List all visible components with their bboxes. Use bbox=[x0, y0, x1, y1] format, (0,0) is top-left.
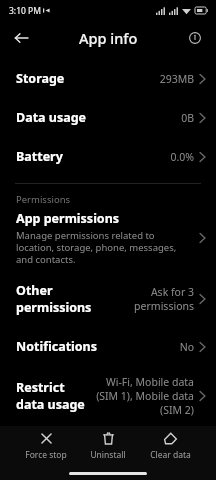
button[interactable]: App details bbox=[182, 25, 208, 51]
staticText: Restrict data usage bbox=[16, 379, 96, 413]
staticText: Manage permissions related to location, … bbox=[16, 229, 194, 266]
button[interactable]: Clear data bbox=[139, 429, 201, 464]
button[interactable]: Other permissions bbox=[0, 273, 216, 325]
staticText: Storage bbox=[16, 70, 65, 87]
button[interactable]: Storage bbox=[0, 59, 216, 98]
staticText: App info bbox=[79, 28, 138, 48]
staticText: Clear data bbox=[150, 449, 191, 461]
staticText: Force stop bbox=[25, 449, 67, 461]
staticText: No bbox=[179, 340, 194, 354]
staticText: 3:10 PM bbox=[9, 5, 41, 17]
staticText: Ask for 3 permissions bbox=[101, 285, 194, 313]
staticText: Uninstall bbox=[90, 449, 126, 461]
staticText: Notifications bbox=[16, 338, 98, 355]
button[interactable]: Force stop bbox=[15, 429, 77, 464]
button[interactable]: Data usage bbox=[0, 98, 216, 137]
staticText: Permissions bbox=[16, 193, 71, 206]
button[interactable]: Uninstall bbox=[77, 429, 139, 464]
staticText: Wi-Fi, Mobile data (SIM 1), Mobile data … bbox=[96, 375, 194, 417]
button[interactable]: App permissions bbox=[0, 209, 216, 273]
staticText: 0B bbox=[181, 111, 194, 125]
staticText: Data usage bbox=[16, 109, 87, 126]
staticText: 293MB bbox=[159, 72, 194, 86]
button[interactable]: Battery bbox=[0, 137, 216, 176]
staticText: Battery bbox=[16, 148, 63, 165]
staticText: App permissions bbox=[16, 210, 120, 227]
staticText: Other permissions bbox=[16, 282, 101, 316]
button[interactable]: Back bbox=[8, 25, 34, 51]
button[interactable]: Restrict data usage bbox=[0, 366, 216, 426]
staticText: 0.0% bbox=[170, 150, 194, 164]
button[interactable]: Notifications bbox=[0, 327, 216, 366]
